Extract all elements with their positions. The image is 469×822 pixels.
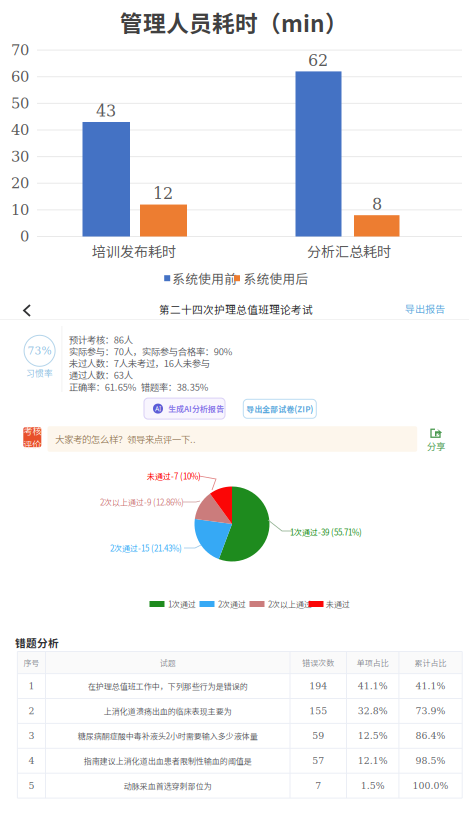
staticText: 0 (20, 228, 29, 245)
staticText: 73% (28, 345, 52, 357)
staticText: 100.0% (413, 780, 449, 791)
staticText: 正确率：61.65% 错题率：38.35% (69, 380, 209, 393)
staticText: 59 (312, 730, 324, 741)
staticText: 评价 (23, 437, 41, 451)
staticText: 第二十四次护理总值班理论考试 (159, 301, 313, 317)
staticText: 单项占比 (357, 657, 389, 668)
staticText: 2次以上通过-9 (12.86%) (100, 496, 184, 508)
staticText: 5 (28, 780, 34, 791)
staticText: 2次以上通过 (268, 598, 312, 610)
staticText: 生成AI分析报告 (168, 403, 224, 414)
button[interactable]: AI (144, 398, 234, 419)
staticText: 2次通过 (218, 598, 246, 610)
staticText: 试题 (160, 657, 176, 668)
staticText: 错误次数 (302, 657, 334, 668)
staticText: 未通过 (326, 598, 350, 610)
staticText: 导出报告 (405, 301, 445, 316)
staticText: 在护理总值班工作中，下列那些行为是错误的 (88, 680, 248, 692)
staticText: 8 (372, 195, 382, 213)
staticText: 上消化道溃疡出血的临床表现主要为 (104, 705, 232, 717)
staticText: 10 (11, 201, 29, 218)
staticText: 1次通过 (168, 598, 196, 610)
staticText: 习惯率 (26, 366, 53, 379)
staticText: 3 (28, 730, 34, 741)
staticText: 1.5% (361, 780, 385, 791)
staticText: 12.1% (358, 755, 388, 766)
staticText: 20 (11, 175, 29, 192)
staticText: 32.8% (358, 705, 388, 716)
staticText: 培训发布耗时 (92, 241, 176, 261)
staticText: 指南建议上消化道出血患者限制性输血的阈值是 (84, 755, 252, 767)
staticText: 导出全部试卷(ZIP) (246, 403, 313, 415)
button[interactable]: 大家考的怎么样？领导来点评一下.. (47, 426, 417, 452)
staticText: 2次通过-15 (21.43%) (110, 542, 182, 554)
button[interactable]: 分享 (425, 425, 447, 455)
staticText: 动脉采血首选穿刺部位为 (124, 780, 212, 791)
staticText: 系统使用前 (172, 269, 237, 287)
staticText: 累计占比 (415, 657, 447, 668)
staticText: 4 (28, 755, 34, 766)
button[interactable]: 导出全部试卷(ZIP) (243, 399, 316, 418)
staticText: 序号 (23, 657, 39, 668)
staticText: 43 (96, 102, 116, 120)
staticText: 未通过-7 (10%) (147, 470, 201, 482)
staticText: 62 (308, 51, 328, 70)
staticText: 50 (11, 95, 29, 112)
staticText: 1 (28, 681, 34, 691)
staticText: 1次通过-39 (55.71%) (290, 526, 362, 538)
staticText: 2 (28, 705, 34, 716)
staticText: 糖尿病酮症酸中毒补液头2小时需要输入多少液体量 (78, 730, 258, 742)
staticText: 60 (11, 68, 29, 85)
staticText: 考核 (23, 424, 41, 437)
staticText: 40 (11, 121, 29, 138)
staticText: 分享 (427, 439, 445, 453)
staticText: 30 (11, 148, 29, 165)
button[interactable]: 导出报告 (398, 295, 452, 322)
staticText: 12 (153, 184, 173, 203)
staticText: 大家考的怎么样？领导来点评一下.. (55, 432, 196, 446)
staticText: 管理人员耗时（min） (120, 6, 348, 38)
staticText: 57 (312, 755, 324, 766)
staticText: 通过人数：63人 (69, 368, 133, 381)
staticText: 错题分析 (15, 635, 59, 650)
staticText: 预计考核：86人 (69, 333, 133, 346)
staticText: 未过人数：7人未考过，16人未参与 (69, 356, 210, 370)
staticText: 41.1% (358, 681, 388, 691)
staticText: 70 (11, 42, 29, 59)
staticText: 系统使用后 (243, 269, 308, 287)
staticText: 98.5% (416, 755, 446, 766)
staticText: 73.9% (416, 705, 446, 716)
staticText: 155 (309, 705, 327, 716)
button[interactable]: 返回 (13, 296, 41, 324)
staticText: 86.4% (416, 730, 446, 741)
staticText: 12.5% (358, 730, 388, 741)
staticText: AI (155, 404, 161, 413)
staticText: 194 (309, 681, 327, 691)
staticText: 41.1% (416, 681, 446, 691)
staticText: 分析汇总耗时 (307, 241, 391, 261)
staticText: 实际参与：70人，实际参与合格率：90% (69, 344, 233, 358)
staticText: 7 (315, 780, 321, 791)
